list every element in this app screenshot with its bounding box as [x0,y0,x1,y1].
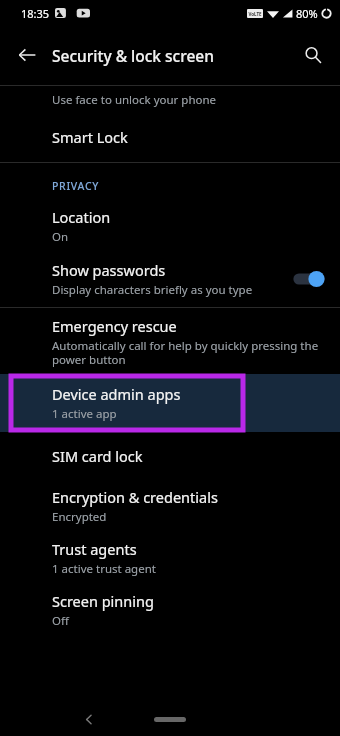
button[interactable]: SIM card lock [0,432,340,480]
button[interactable]: Emergency rescue [0,308,340,374]
button[interactable]: Back [74,704,104,734]
button[interactable]: Device admin apps [0,374,340,432]
staticText: PRIVACY [52,179,100,193]
staticText: Screen pinning [52,591,154,611]
button[interactable]: Screen pinning [0,584,340,636]
button[interactable]: Smart Lock [0,112,340,162]
button[interactable]: Location [0,201,340,251]
staticText: Use face to unlock your phone [52,92,217,108]
staticText: Security & lock screen [52,45,214,66]
staticText: 80% [296,6,318,21]
button[interactable]: Encryption & credentials [0,480,340,532]
staticText: SIM card lock [52,446,143,466]
staticText: 18:35 [21,6,50,21]
button[interactable]: Show passwords [0,251,340,307]
button[interactable]: Use face to unlock your phone [0,86,340,112]
staticText: Device admin apps [52,384,181,404]
staticText: Encryption & credentials [52,487,218,507]
staticText: Trust agents [52,539,137,559]
button[interactable]: Back [6,34,48,76]
staticText: Off [52,613,69,629]
staticText: VoLTE [248,11,262,17]
staticText: Display characters briefly as you type [52,282,253,298]
button[interactable]: Search [293,35,333,75]
staticText: Emergency rescue [52,316,177,336]
staticText: Location [52,207,111,227]
button[interactable]: Trust agents [0,532,340,584]
button[interactable]: Home [154,717,186,722]
staticText: Encrypted [52,509,107,525]
staticText: Smart Lock [52,127,128,147]
staticText: Automatically call for help by quickly p… [52,338,322,367]
staticText: Show passwords [52,260,166,280]
staticText: On [52,229,69,245]
staticText: 1 active app [52,406,117,422]
staticText: 1 active trust agent [52,561,156,577]
